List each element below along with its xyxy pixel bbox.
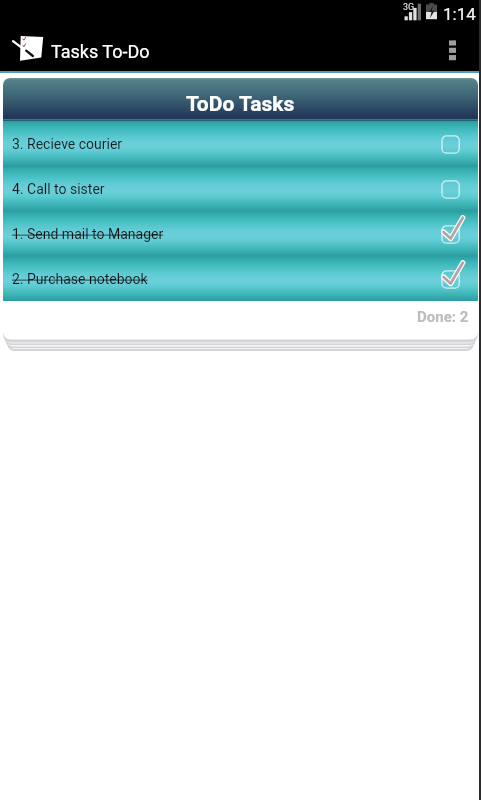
staticText: 1:14 (443, 4, 476, 24)
button[interactable]: Mark incomplete (437, 262, 471, 296)
staticText: 1. Send mail to Manager (12, 226, 164, 242)
button[interactable]: More options (431, 28, 473, 73)
button[interactable]: 1. Send mail to Manager (3, 211, 478, 256)
button[interactable]: 4. Call to sister (3, 166, 478, 211)
staticText: Done: 2 (417, 308, 469, 326)
staticText: 3G (403, 2, 415, 13)
button[interactable]: Mark incomplete (437, 217, 471, 251)
button[interactable]: Mark complete (437, 172, 471, 206)
staticText: Tasks To-Do (51, 41, 150, 62)
staticText: ToDo Tasks (186, 92, 295, 117)
button[interactable]: 3. Recieve courier (3, 121, 478, 166)
staticText: 4. Call to sister (12, 181, 105, 197)
button[interactable]: 2. Purchase notebook (3, 256, 478, 301)
button[interactable]: Mark complete (437, 127, 471, 161)
staticText: 3. Recieve courier (12, 136, 123, 152)
staticText: 2. Purchase notebook (12, 271, 148, 287)
